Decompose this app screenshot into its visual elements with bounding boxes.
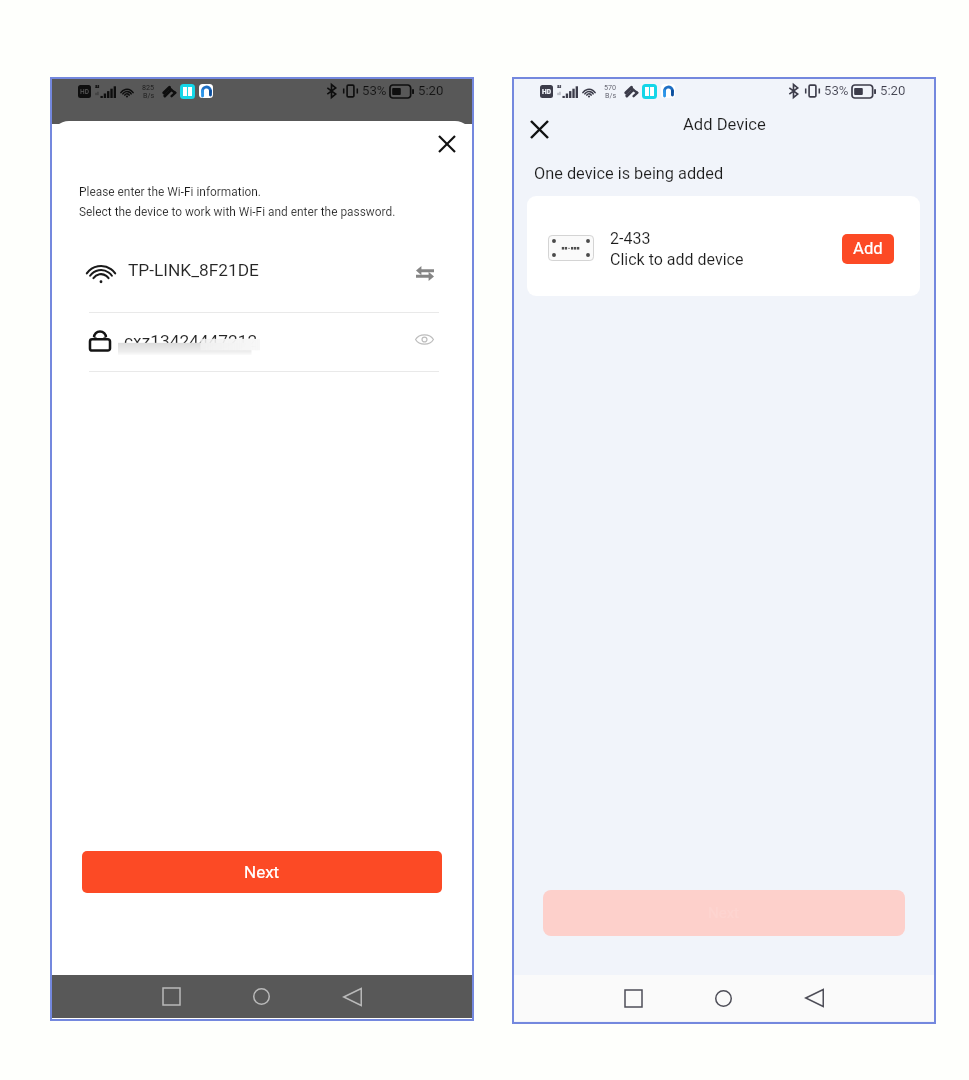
staticText: Next <box>244 862 280 882</box>
staticText: TP-LINK_8F21DE <box>128 260 259 280</box>
staticText: HD <box>80 88 89 96</box>
staticText: Select the device to work with Wi-Fi and… <box>79 205 396 219</box>
staticText: B/s <box>605 91 617 99</box>
button[interactable] <box>527 196 920 296</box>
staticText: 5:20 <box>418 83 444 98</box>
button[interactable]: Recents <box>153 975 189 1018</box>
button[interactable]: Next <box>82 851 442 893</box>
button[interactable]: Close <box>430 127 464 161</box>
staticText: 570 <box>604 83 617 91</box>
staticText: cxz13424447212 <box>124 331 258 351</box>
staticText: Add <box>853 239 883 259</box>
button[interactable]: Back <box>796 975 832 1021</box>
staticText: HD <box>542 88 551 96</box>
staticText: One device is being added <box>534 164 724 183</box>
staticText: Please enter the Wi-Fi information. <box>79 185 261 199</box>
button[interactable]: TP-LINK_8F21DE <box>52 249 472 298</box>
other: Change network <box>409 257 441 289</box>
button[interactable]: Home <box>705 975 741 1021</box>
button[interactable]: cxz13424447212 <box>52 318 472 368</box>
button[interactable]: Close <box>522 112 556 146</box>
button[interactable]: Recents <box>615 975 651 1021</box>
staticText: 53% <box>824 83 849 98</box>
button[interactable]: Back <box>334 975 370 1018</box>
staticText: 2-433 <box>610 229 651 248</box>
staticText: Add Device <box>683 115 766 134</box>
button[interactable]: Home <box>243 975 279 1018</box>
button[interactable]: Show password <box>408 323 440 355</box>
staticText: B/s <box>143 91 155 99</box>
staticText: 825 <box>142 83 155 91</box>
staticText: 53% <box>362 83 387 98</box>
staticText: 5:20 <box>880 83 906 98</box>
staticText: Click to add device <box>610 250 744 269</box>
button[interactable]: Add <box>842 234 894 264</box>
